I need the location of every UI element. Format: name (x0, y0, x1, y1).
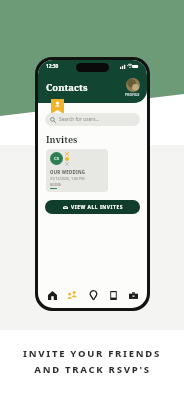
button[interactable]: Home (43, 286, 61, 304)
button[interactable]: Contacts tab (51, 99, 64, 114)
staticText: Invites (46, 133, 78, 145)
button[interactable]: Places (84, 286, 102, 304)
button[interactable]: Search for users... (45, 113, 140, 126)
button[interactable]: VIEW ALL INVITES (45, 200, 140, 214)
staticText: CS (54, 156, 59, 162)
staticText: OUR WEDDING (50, 169, 86, 175)
staticText: 12:30 (46, 63, 59, 70)
staticText: VIEW ALL INVITES (71, 204, 123, 211)
staticText: PROFILE (125, 93, 140, 97)
staticText: AND TRACK RSVP'S (34, 363, 151, 376)
staticText: 31/12/2026, 1:00 PM (50, 176, 85, 181)
staticText: GOING (50, 183, 62, 187)
button[interactable]: Contacts (63, 286, 81, 304)
button[interactable]: Notes (104, 286, 122, 304)
staticText: Contacts (46, 81, 88, 94)
button[interactable]: Vendors (124, 286, 142, 304)
button[interactable]: CS (46, 149, 108, 192)
staticText: Search for users... (59, 116, 100, 123)
staticText: INVITE YOUR FRIENDS (23, 347, 161, 360)
button[interactable]: Profile (125, 78, 140, 97)
